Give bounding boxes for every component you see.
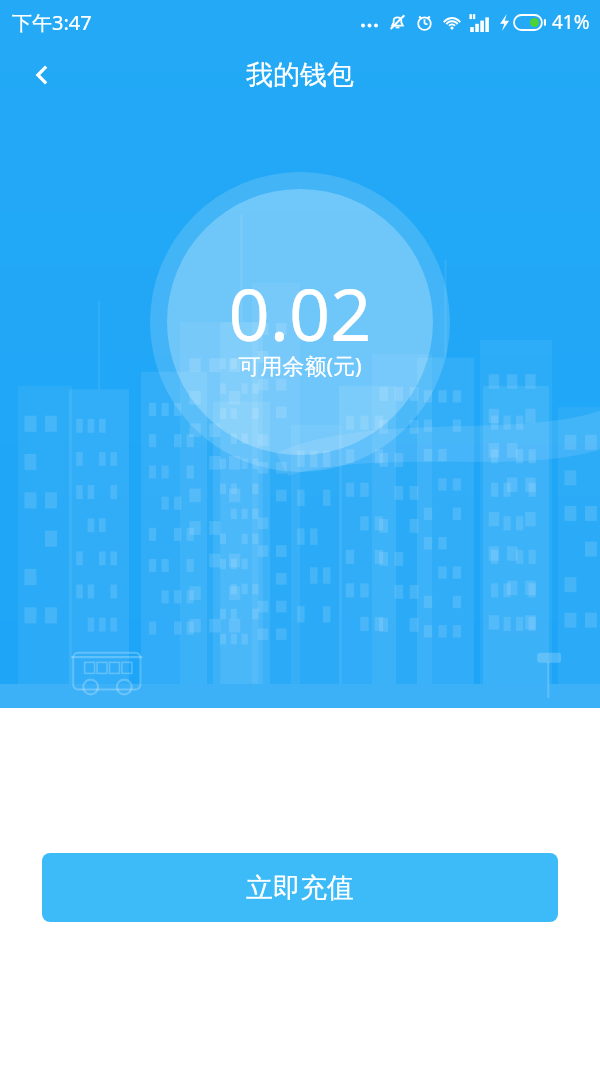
staticText: 立即充值	[246, 871, 354, 905]
staticText: 41%	[552, 9, 590, 35]
button[interactable]: Back	[14, 47, 70, 103]
staticText: 我的钱包	[246, 58, 354, 92]
button[interactable]: 立即充值	[42, 853, 558, 922]
staticText: 下午3:47	[12, 9, 92, 36]
staticText: 可用余额(元)	[0, 350, 600, 380]
staticText: 0.02	[0, 264, 600, 362]
